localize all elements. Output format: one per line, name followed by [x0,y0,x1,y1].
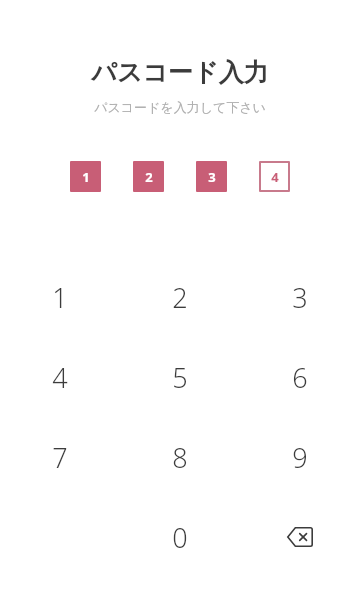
button[interactable]: 7 [0,417,120,497]
button[interactable]: 3 [240,257,360,337]
staticText: 1 [52,279,68,316]
button[interactable]: 6 [240,337,360,417]
staticText: 2 [145,168,153,186]
button[interactable]: 4 [259,161,290,192]
staticText: 9 [292,439,308,476]
button[interactable]: 2 [120,257,240,337]
staticText: 7 [52,439,68,476]
staticText: パスコードを入力して下さい [94,99,266,115]
button[interactable]: 0 [120,497,240,577]
staticText: 6 [292,359,308,396]
staticText: パスコード入力 [91,57,269,88]
button[interactable]: 1 [0,257,120,337]
staticText: 4 [271,168,279,186]
button[interactable]: 8 [120,417,240,497]
button[interactable]: 9 [240,417,360,497]
staticText: 3 [208,168,216,186]
staticText: 0 [172,519,188,556]
staticText: 1 [82,168,90,186]
button[interactable]: 4 [0,337,120,417]
button[interactable]: 3 [196,161,227,192]
button[interactable]: Backspace [240,497,360,577]
button[interactable]: 2 [133,161,164,192]
button[interactable]: 1 [70,161,101,192]
staticText: 8 [172,439,188,476]
button[interactable]: 5 [120,337,240,417]
staticText: 3 [292,279,308,316]
staticText: 5 [172,359,188,396]
staticText: 2 [172,279,188,316]
staticText: 4 [52,359,68,396]
